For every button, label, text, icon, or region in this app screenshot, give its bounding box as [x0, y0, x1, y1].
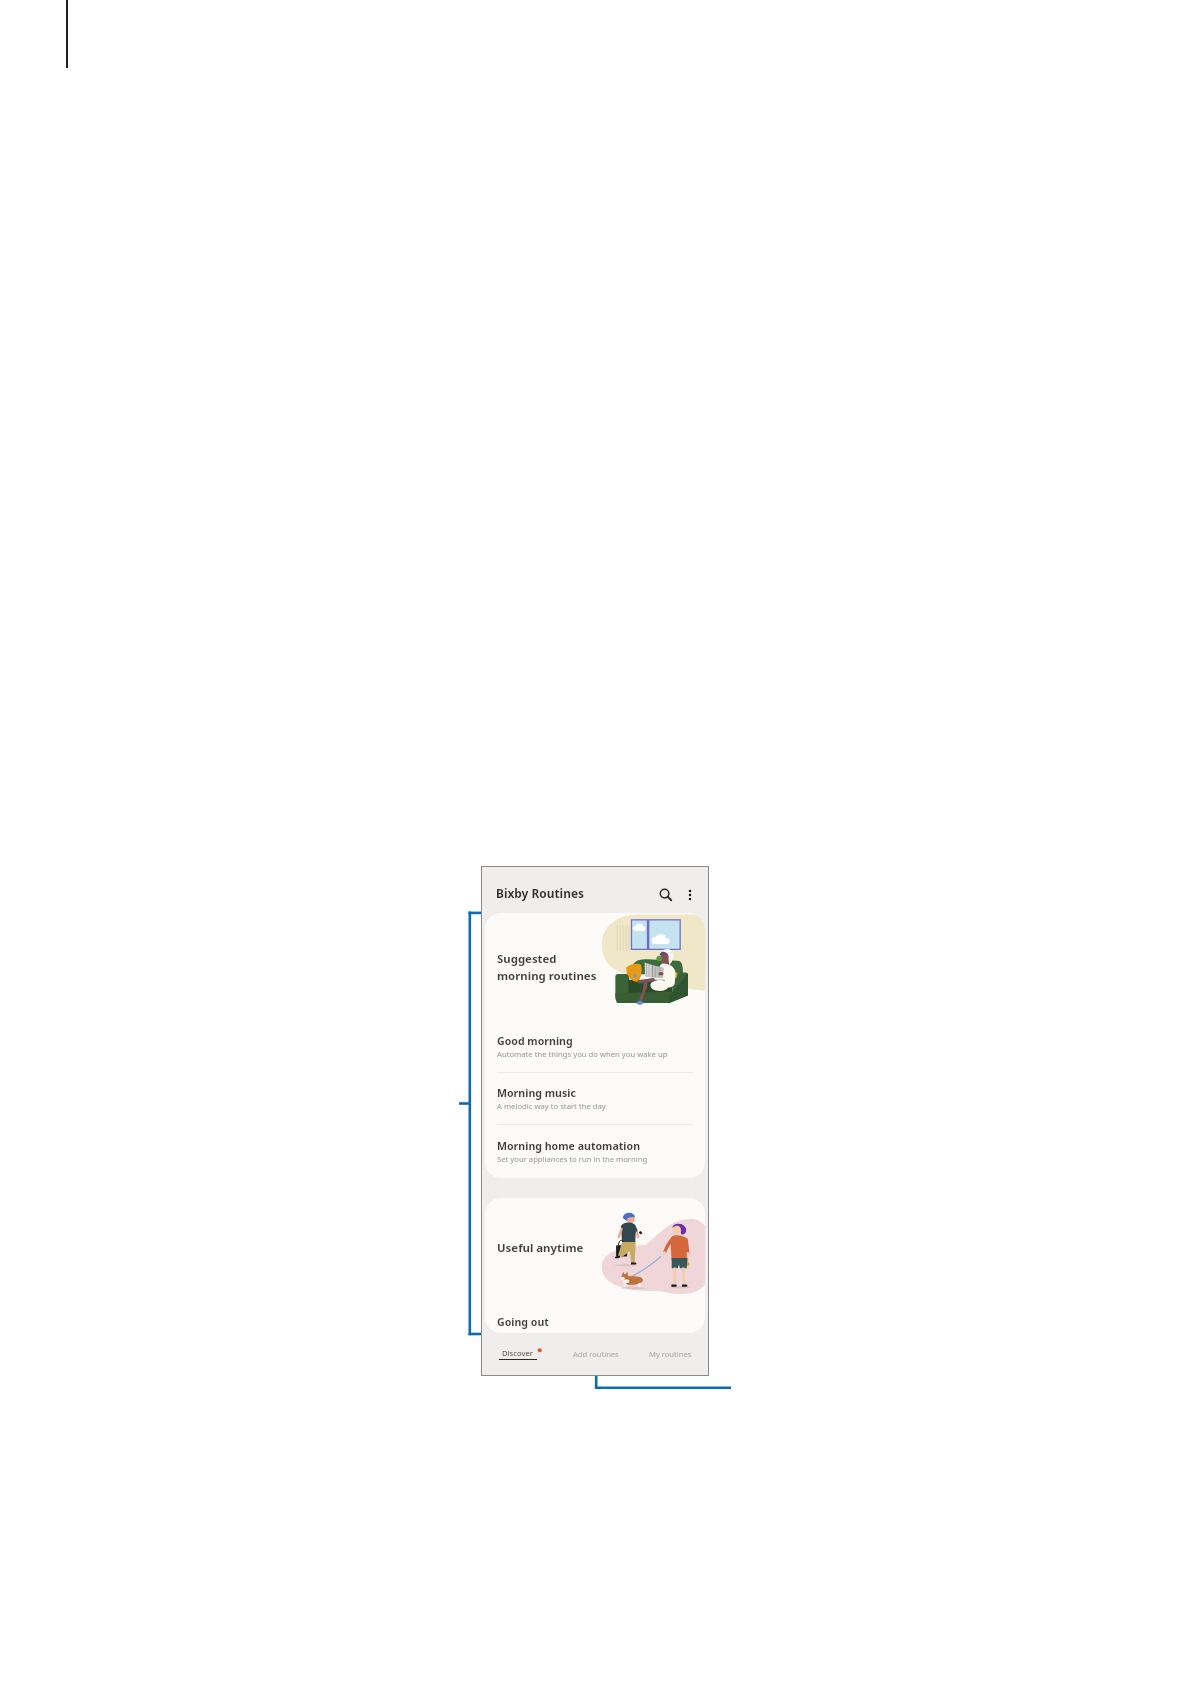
- staticText: Discover: [502, 1348, 534, 1358]
- staticText: Morning home automation: [497, 1139, 641, 1153]
- staticText: Automate the things you do when you wake…: [497, 1049, 668, 1059]
- staticText: Set your appliances to run in the mornin…: [497, 1154, 648, 1164]
- staticText: Add routines: [573, 1349, 619, 1359]
- button[interactable]: Discover: [482, 1333, 558, 1375]
- button[interactable]: Going out: [485, 1307, 705, 1333]
- staticText: A melodic way to start the day: [497, 1101, 606, 1111]
- button[interactable]: Search: [655, 884, 677, 906]
- staticText: Suggested morning routines: [497, 951, 597, 983]
- button[interactable]: Good morning: [485, 1021, 705, 1072]
- staticText: Good morning: [497, 1034, 573, 1048]
- button[interactable]: Morning home automation: [485, 1125, 705, 1178]
- button[interactable]: My routines: [633, 1333, 708, 1375]
- staticText: Bixby Routines: [496, 885, 584, 901]
- staticText: Going out: [497, 1315, 549, 1329]
- staticText: Useful anytime: [497, 1240, 584, 1256]
- staticText: My routines: [649, 1349, 692, 1359]
- button[interactable]: Suggested morning routines: [485, 913, 705, 1021]
- button[interactable]: Morning music: [485, 1073, 705, 1124]
- button[interactable]: Useful anytime: [485, 1198, 705, 1300]
- staticText: Morning music: [497, 1086, 576, 1100]
- button[interactable]: Add routines: [558, 1333, 633, 1375]
- button[interactable]: More options: [679, 884, 701, 906]
